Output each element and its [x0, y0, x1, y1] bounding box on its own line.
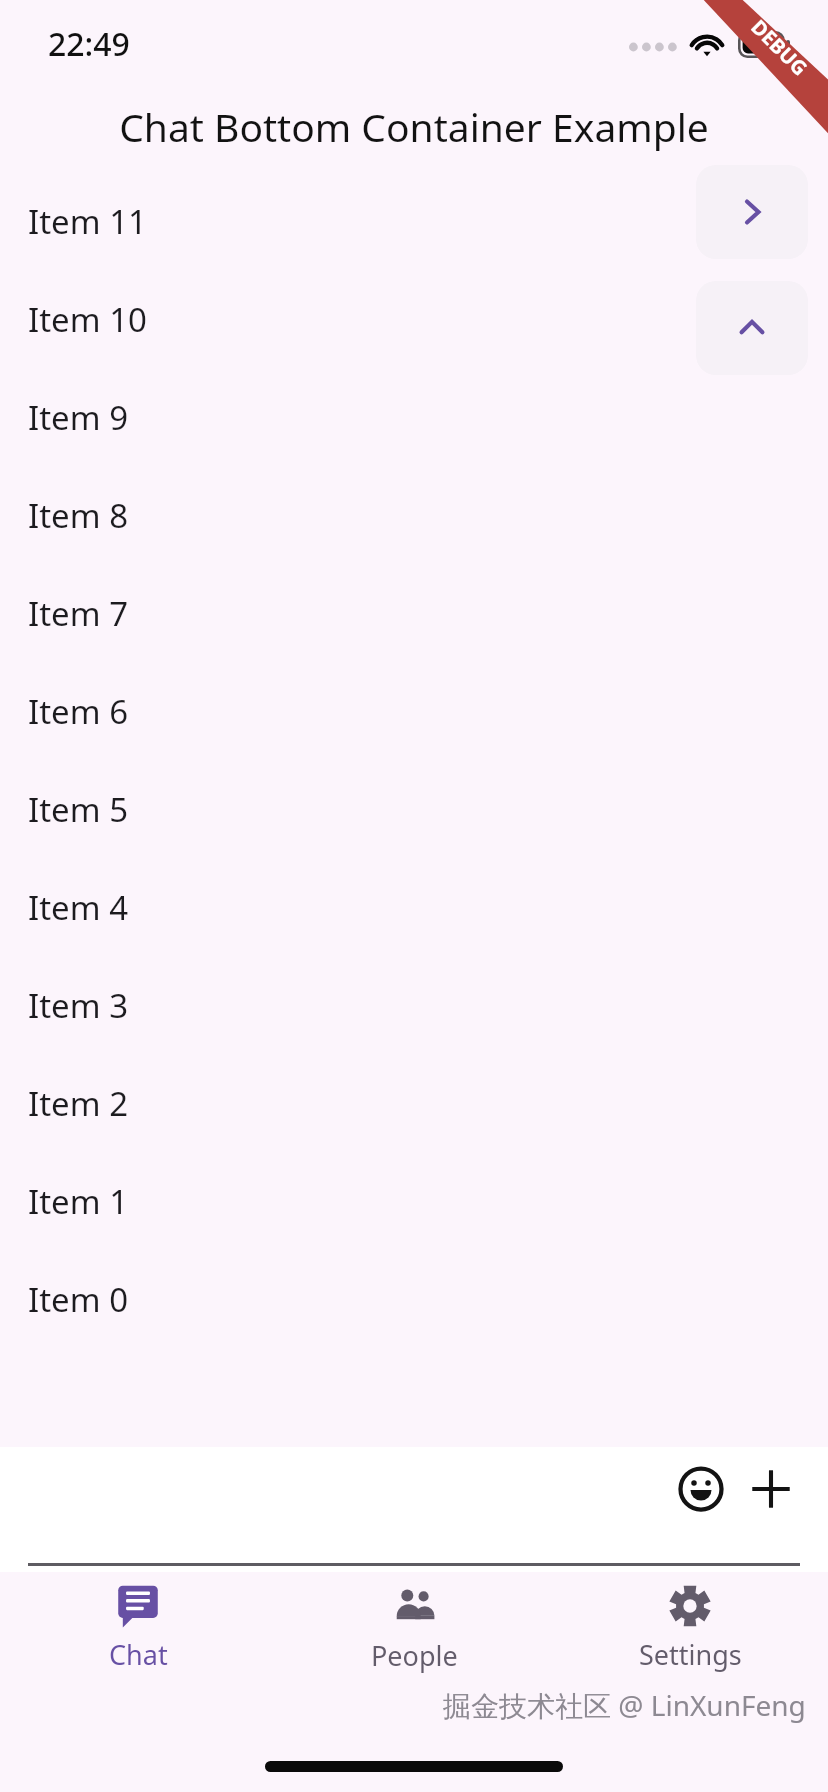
button[interactable]: Item 8 [0, 466, 828, 564]
button[interactable]: Scroll up [696, 281, 808, 375]
button[interactable]: Item 7 [0, 564, 828, 662]
button[interactable]: Chat [0, 1572, 276, 1684]
button[interactable]: Item 11 [0, 172, 828, 270]
staticText: Item 3 [28, 983, 129, 1028]
button[interactable]: Item 1 [0, 1152, 828, 1250]
button[interactable]: Scroll right [696, 165, 808, 259]
button[interactable]: Emoji [672, 1460, 730, 1518]
staticText: Item 10 [28, 297, 147, 342]
staticText: Item 5 [28, 787, 129, 832]
staticText: Chat Bottom Container Example [119, 100, 709, 153]
button[interactable]: Item 9 [0, 368, 828, 466]
staticText: Item 8 [28, 493, 129, 538]
button[interactable]: Item 5 [0, 760, 828, 858]
staticText: Chat [109, 1636, 168, 1673]
button[interactable]: Item 3 [0, 956, 828, 1054]
button[interactable]: Item 6 [0, 662, 828, 760]
staticText: Item 9 [28, 395, 129, 440]
staticText: Item 6 [28, 689, 129, 734]
staticText: Item 1 [28, 1179, 129, 1224]
staticText: Item 11 [28, 199, 147, 244]
button[interactable]: Item 10 [0, 270, 828, 368]
button[interactable]: Item 0 [0, 1250, 828, 1348]
staticText: Item 7 [28, 591, 129, 636]
staticText: Item 0 [28, 1277, 129, 1322]
button[interactable]: Item 4 [0, 858, 828, 956]
staticText: People [371, 1637, 458, 1674]
button[interactable]: Settings [552, 1572, 828, 1684]
staticText: 掘金技术社区 @ LinXunFeng [443, 1686, 806, 1724]
button[interactable]: Item 2 [0, 1054, 828, 1152]
staticText: Item 4 [28, 885, 129, 930]
staticText: Item 2 [28, 1081, 129, 1126]
staticText: DEBUG [746, 14, 813, 81]
button[interactable]: People [276, 1572, 552, 1684]
staticText: 22:49 [48, 22, 130, 66]
staticText: Settings [639, 1636, 742, 1673]
button[interactable]: Add attachment [742, 1460, 800, 1518]
